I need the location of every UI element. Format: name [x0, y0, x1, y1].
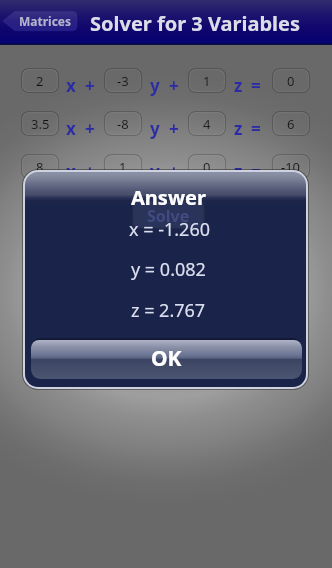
button[interactable]: 1 — [104, 154, 142, 179]
staticText: Solve — [147, 205, 190, 227]
button[interactable]: Matrices — [2, 10, 78, 32]
staticText: -3 — [117, 72, 129, 90]
staticText: + — [85, 160, 95, 183]
staticText: = — [251, 117, 261, 140]
staticText: 3.5 — [31, 115, 50, 133]
staticText: -8 — [117, 115, 129, 133]
staticText: z — [234, 117, 243, 140]
staticText: z = 2.767 — [131, 298, 206, 323]
button[interactable]: -3 — [104, 68, 142, 93]
staticText: x — [66, 117, 76, 140]
staticText: 0 — [203, 158, 211, 176]
button[interactable]: OK — [31, 340, 302, 379]
staticText: + — [85, 74, 95, 97]
staticText: y — [150, 117, 160, 140]
staticText: x — [66, 74, 76, 97]
button[interactable]: Solve — [130, 200, 203, 229]
staticText: + — [169, 160, 179, 183]
staticText: Matrices — [19, 13, 72, 29]
staticText: y — [150, 160, 160, 183]
staticText: y — [150, 74, 160, 97]
staticText: Solve — [145, 204, 188, 226]
staticText: 6 — [287, 115, 295, 133]
staticText: y = 0.082 — [131, 257, 206, 282]
staticText: x — [66, 160, 76, 183]
staticText: 1 — [119, 158, 127, 176]
staticText: Solver for 3 Variables — [90, 10, 301, 37]
staticText: x = -1.260 — [129, 217, 210, 242]
button[interactable]: 6 — [272, 111, 310, 136]
staticText: 1 — [203, 72, 211, 90]
button[interactable]: 0 — [188, 154, 226, 179]
button[interactable]: 4 — [188, 111, 226, 136]
button[interactable]: -8 — [104, 111, 142, 136]
staticText: + — [169, 74, 179, 97]
staticText: z — [234, 160, 243, 183]
staticText: 8 — [36, 158, 44, 176]
staticText: 2 — [36, 72, 44, 90]
staticText: z — [234, 74, 243, 97]
button[interactable]: 0 — [272, 68, 310, 93]
staticText: + — [169, 117, 179, 140]
staticText: = — [251, 160, 261, 183]
button[interactable]: -10 — [272, 154, 310, 179]
staticText: + — [85, 117, 95, 140]
staticText: Answer — [131, 184, 206, 211]
staticText: 4 — [203, 115, 211, 133]
staticText: = — [251, 74, 261, 97]
staticText: -10 — [281, 158, 301, 176]
button[interactable]: 8 — [21, 154, 59, 179]
staticText: 0 — [287, 72, 295, 90]
button[interactable]: 3.5 — [21, 111, 59, 136]
button[interactable]: 2 — [21, 68, 59, 93]
button[interactable]: 1 — [188, 68, 226, 93]
staticText: OK — [151, 344, 182, 373]
